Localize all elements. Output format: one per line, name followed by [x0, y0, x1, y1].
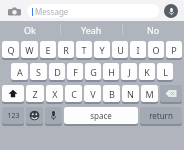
button[interactable]: J	[121, 63, 137, 80]
button[interactable]: X	[46, 85, 63, 102]
staticText: No	[147, 24, 160, 36]
button[interactable]: K	[139, 63, 155, 80]
button[interactable]: Yeah	[61, 21, 122, 38]
button[interactable]: H	[103, 63, 119, 80]
button[interactable]: Y	[94, 41, 110, 58]
staticText: X	[52, 88, 58, 100]
button[interactable]: Dictation	[45, 107, 62, 124]
button[interactable]: I	[130, 41, 146, 58]
button[interactable]: S	[30, 63, 47, 80]
button[interactable]: D	[49, 63, 65, 80]
button[interactable]: space	[64, 107, 138, 124]
button[interactable]: A	[11, 63, 28, 80]
staticText: Z	[32, 88, 38, 100]
staticText: Yeah	[81, 24, 102, 36]
staticText: Message	[35, 6, 69, 17]
staticText: F	[73, 66, 78, 78]
staticText: Q	[7, 44, 15, 56]
button[interactable]: 123	[2, 107, 24, 124]
button[interactable]: L	[157, 63, 173, 80]
button[interactable]: E	[40, 41, 56, 58]
button[interactable]: Emoji	[26, 107, 43, 124]
button[interactable]: T	[76, 41, 92, 58]
button[interactable]: C	[65, 85, 82, 102]
staticText: T	[81, 44, 87, 56]
button[interactable]: U	[112, 41, 128, 58]
button[interactable]: N	[122, 85, 139, 102]
button[interactable]: P	[166, 41, 182, 58]
staticText: P	[171, 44, 177, 56]
staticText: D	[54, 66, 61, 78]
button[interactable]: G	[85, 63, 101, 80]
button[interactable]: B	[103, 85, 120, 102]
staticText: R	[63, 44, 69, 56]
button[interactable]: W	[21, 41, 38, 58]
staticText: J	[128, 66, 131, 78]
staticText: E	[45, 44, 51, 56]
staticText: I	[136, 44, 140, 56]
staticText: Y	[99, 44, 105, 56]
staticText: K	[144, 66, 150, 78]
staticText: M	[145, 88, 154, 100]
button[interactable]: M	[141, 85, 158, 102]
staticText: return	[149, 110, 173, 121]
staticText: C	[71, 88, 77, 100]
button[interactable]: F	[67, 63, 83, 80]
staticText: H	[108, 66, 115, 78]
staticText: V	[90, 88, 96, 100]
staticText: 123	[7, 111, 20, 121]
button[interactable]: O	[148, 41, 164, 58]
button[interactable]: Delete	[160, 85, 182, 102]
button[interactable]: return	[140, 107, 182, 124]
staticText: S	[36, 66, 41, 78]
button[interactable]: Message	[27, 4, 159, 18]
staticText: space	[90, 110, 112, 121]
staticText: Ok	[24, 24, 36, 36]
button[interactable]: V	[84, 85, 101, 102]
staticText: U	[117, 44, 124, 56]
staticText: N	[127, 88, 134, 100]
staticText: A	[17, 66, 23, 78]
staticText: L	[163, 66, 168, 78]
staticText: G	[90, 66, 97, 78]
staticText: B	[109, 88, 115, 100]
button[interactable]: No	[123, 21, 184, 38]
button[interactable]: Z	[26, 85, 44, 102]
staticText: O	[152, 44, 160, 56]
button[interactable]: Camera	[6, 3, 22, 19]
button[interactable]: R	[58, 41, 74, 58]
button[interactable]: Q	[2, 41, 19, 58]
staticText: W	[25, 44, 34, 56]
button[interactable]: Voice message	[164, 4, 178, 18]
button[interactable]: Ok	[0, 21, 60, 38]
button[interactable]: Shift	[2, 85, 24, 102]
